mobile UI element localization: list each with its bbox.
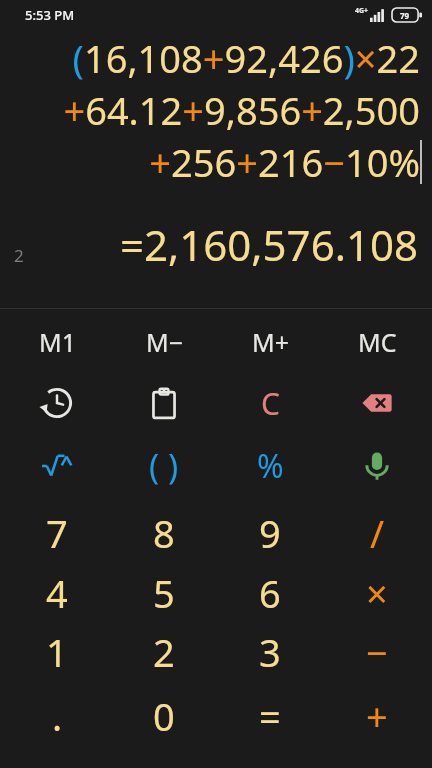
button[interactable]: ×	[325, 564, 429, 622]
staticText: +256+216−10%	[149, 136, 420, 188]
staticText: 1	[46, 626, 68, 678]
staticText: 9	[259, 507, 281, 559]
button[interactable]: Voice input	[325, 437, 429, 495]
staticText: %	[257, 444, 284, 488]
staticText: 0	[153, 690, 175, 742]
staticText: 79	[400, 10, 410, 21]
staticText: M1	[39, 325, 76, 359]
staticText: .	[52, 690, 63, 742]
staticText: 5	[153, 567, 175, 619]
button[interactable]: 9	[218, 504, 322, 562]
staticText: 8	[153, 507, 175, 559]
staticText: +64.12+9,856+2,500	[0, 84, 420, 136]
button[interactable]: −	[325, 623, 429, 681]
button[interactable]: M−	[112, 313, 216, 371]
staticText: 4	[46, 567, 68, 619]
staticText: (16,108+92,426)×22	[0, 32, 420, 84]
button[interactable]: 3	[218, 623, 322, 681]
button[interactable]: 5	[112, 564, 216, 622]
button[interactable]: /	[325, 504, 429, 562]
button[interactable]: C	[218, 374, 322, 432]
button[interactable]: %	[218, 437, 322, 495]
button[interactable]: 1	[5, 623, 109, 681]
button[interactable]: 6	[218, 564, 322, 622]
staticText: =2,160,576.108	[24, 216, 418, 273]
staticText: ( )	[149, 443, 179, 489]
staticText: =	[259, 690, 281, 742]
staticText: 7	[46, 507, 68, 559]
button[interactable]: Paste	[112, 374, 216, 432]
button[interactable]: 0	[112, 687, 216, 745]
button[interactable]: =	[218, 687, 322, 745]
staticText: /	[370, 507, 385, 559]
staticText: 3	[259, 626, 281, 678]
staticText: MC	[358, 325, 397, 359]
button[interactable]: .	[5, 687, 109, 745]
button[interactable]: M1	[5, 313, 109, 371]
button[interactable]: MC	[325, 313, 429, 371]
staticText: 2	[14, 244, 24, 267]
button[interactable]: Square root and power	[5, 437, 109, 495]
staticText: ×	[366, 567, 388, 619]
button[interactable]: 8	[112, 504, 216, 562]
button[interactable]: Backspace	[325, 374, 429, 432]
button[interactable]: ( )	[112, 437, 216, 495]
staticText: M−	[146, 325, 183, 359]
staticText: 4G+	[355, 6, 369, 16]
button[interactable]: +	[325, 687, 429, 745]
button[interactable]: 2	[112, 623, 216, 681]
staticText: C	[261, 383, 280, 424]
button[interactable]: History	[5, 374, 109, 432]
button[interactable]: M+	[218, 313, 322, 371]
staticText: 6	[259, 567, 281, 619]
button[interactable]: 4	[5, 564, 109, 622]
button[interactable]: 7	[5, 504, 109, 562]
staticText: M+	[252, 325, 289, 359]
staticText: +	[366, 690, 388, 742]
staticText: −	[366, 626, 388, 678]
staticText: 2	[153, 626, 175, 678]
staticText: 5:53 PM	[25, 6, 75, 24]
